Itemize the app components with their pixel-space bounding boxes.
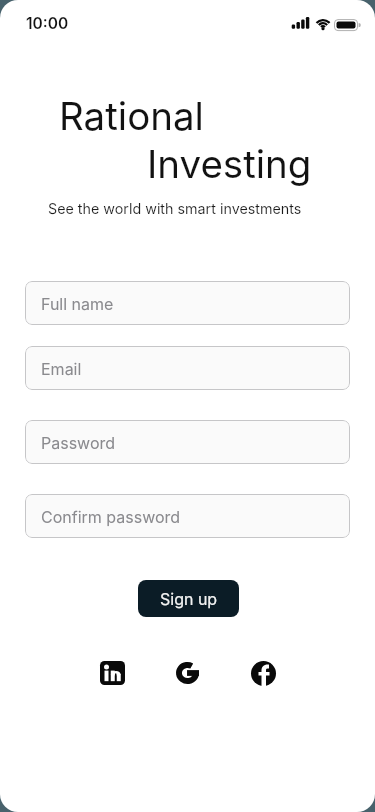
staticText: See the world with smart investments [48,200,302,217]
staticText: Sign up [160,589,218,608]
staticText: Confirm password [41,507,181,526]
button[interactable]: Email [25,346,350,390]
button[interactable] [176,662,199,684]
button[interactable] [100,661,125,685]
staticText: Email [41,359,82,378]
button[interactable]: Confirm password [25,494,350,538]
button[interactable]: Sign up [138,580,239,617]
staticText: Full name [41,294,114,313]
staticText: Rational [59,93,204,140]
button[interactable]: Full name [25,281,350,325]
staticText: Password [41,433,116,452]
staticText: 10:00 [26,14,69,33]
button[interactable] [251,661,276,686]
button[interactable]: Password [25,420,350,464]
staticText: Investing [147,141,312,188]
